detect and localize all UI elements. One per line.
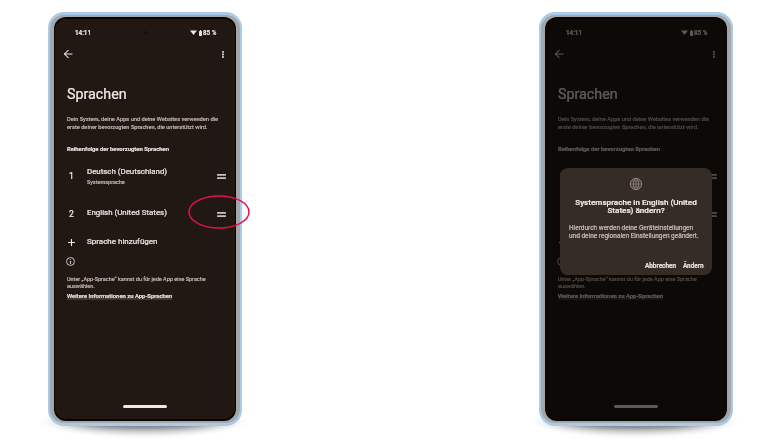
staticText: Sprachen [558,86,618,103]
button[interactable]: Abbrechen [645,260,676,272]
staticText: 85 % [694,29,708,36]
staticText: Ändern [683,262,704,270]
button[interactable]: Verschieben [706,171,718,181]
staticText: Sprache hinzufügen [87,237,158,246]
staticText: Unter „App-Sprache“ kannst du für jede A… [558,276,713,290]
button[interactable]: Verschieben [215,171,227,181]
staticText: Dein System, deine Apps und deine Websit… [558,116,714,130]
button[interactable] [55,204,235,226]
button[interactable]: Verschieben [215,209,227,219]
button[interactable]: Zurück [58,44,78,64]
staticText: Sprachen [67,86,127,103]
staticText: 14:11 [566,29,582,36]
staticText: Hierdurch werden deine Geräteinstellunge… [569,224,709,239]
button[interactable]: Weitere Informationen zu App-Sprachen [67,293,173,300]
button[interactable]: Zurück [549,44,569,64]
staticText: 1 [69,171,74,181]
staticText: Weitere Informationen zu App-Sprachen [67,293,173,300]
button[interactable] [546,233,726,255]
staticText: Deutsch (Deutschland) [578,167,659,176]
staticText: Abbrechen [645,262,676,270]
button[interactable] [546,162,726,190]
staticText: 85 % [203,29,217,36]
staticText: 2 [69,209,74,219]
staticText: 14:11 [75,29,91,36]
button[interactable] [55,233,235,255]
staticText: English (United States) [87,208,167,217]
button[interactable] [546,204,726,226]
staticText: Sprache hinzufügen [578,237,649,246]
staticText: Deutsch (Deutschland) [87,167,168,176]
staticText: Reihenfolge der bevorzugten Sprachen [67,146,170,153]
button[interactable]: Weitere Optionen [704,44,724,64]
staticText: Weitere Informationen zu App-Sprachen [558,293,664,300]
staticText: Unter „App-Sprache“ kannst du für jede A… [67,276,222,290]
staticText: Systemsprache in English (United States)… [568,197,704,215]
button[interactable]: Ändern [683,260,704,272]
button[interactable]: Weitere Optionen [213,44,233,64]
staticText: English (United States) [578,208,658,217]
staticText: Reihenfolge der bevorzugten Sprachen [558,146,661,153]
staticText: Systemsprache [87,179,125,185]
button[interactable]: Verschieben [706,209,718,219]
staticText: Dein System, deine Apps und deine Websit… [67,116,223,130]
button[interactable]: Weitere Informationen zu App-Sprachen [558,293,664,300]
staticText: 1 [560,171,565,181]
button[interactable] [55,162,235,190]
